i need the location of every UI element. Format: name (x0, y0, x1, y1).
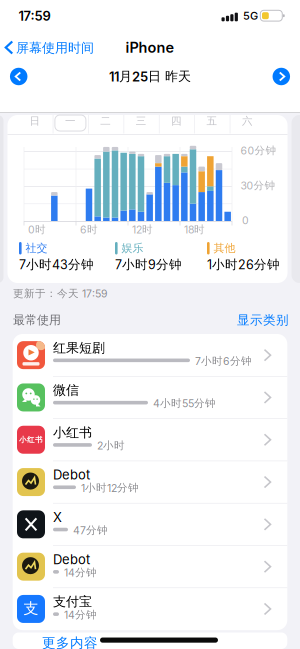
staticText: Debot (53, 552, 90, 567)
staticText: 最常使用 (13, 312, 61, 327)
staticText: 红果短剧 (53, 340, 105, 356)
staticText: 0 (242, 214, 249, 227)
staticText: 18时 (184, 223, 205, 236)
staticText: 60分钟 (240, 144, 276, 157)
staticText: 47分钟 (73, 523, 108, 537)
staticText: 0时 (28, 223, 46, 236)
staticText: 1小时12分钟 (81, 481, 139, 494)
staticText: 7小时43分钟 (19, 257, 94, 272)
staticText: 更新于：今天 17:59 (13, 287, 108, 300)
staticText: 一 (65, 114, 76, 128)
button[interactable]: 小红书 (13, 419, 287, 461)
button[interactable]: 微信 (13, 376, 287, 419)
staticText: 三 (136, 114, 147, 128)
staticText: 支付宝 (53, 594, 92, 610)
staticText: 显示类别 (237, 312, 289, 328)
staticText: iPhone (125, 39, 174, 56)
button[interactable]: Debot (13, 545, 287, 588)
staticText: 30分钟 (240, 179, 275, 192)
staticText: 娱乐 (121, 241, 143, 255)
staticText: 屏幕使用时间 (16, 40, 94, 56)
staticText: X (53, 509, 62, 525)
staticText: 4小时55分钟 (153, 397, 216, 410)
button[interactable]: 更多内容 (13, 632, 287, 649)
staticText: 四 (171, 114, 182, 128)
staticText: 日 (29, 114, 40, 128)
staticText: 二 (100, 114, 111, 128)
staticText: 微信 (53, 382, 79, 398)
staticText: 14分钟 (64, 608, 97, 621)
button[interactable]: 屏幕使用时间 (2, 32, 110, 62)
staticText: 6时 (80, 223, 98, 236)
button[interactable]: 支 (13, 588, 287, 630)
button[interactable]: 后一天 (273, 68, 290, 85)
button[interactable]: X (13, 503, 287, 545)
staticText: 1小时26分钟 (207, 257, 280, 272)
staticText: 更多内容 (42, 634, 98, 649)
staticText: 社交 (25, 241, 47, 255)
staticText: 12时 (132, 223, 153, 236)
staticText: 五 (206, 114, 217, 128)
staticText: 小红书 (19, 435, 43, 444)
staticText: 2小时 (97, 439, 125, 452)
staticText: 5G (243, 9, 258, 22)
staticText: 六 (242, 114, 253, 128)
button[interactable]: 前一天 (10, 68, 27, 85)
staticText: 7小时6分钟 (195, 354, 252, 367)
staticText: 14分钟 (64, 566, 97, 579)
button[interactable]: Debot (13, 461, 287, 503)
button[interactable]: 红果短剧 (13, 334, 287, 376)
staticText: Debot (53, 467, 90, 483)
staticText: 7小时9分钟 (115, 257, 182, 272)
staticText: 17:59 (18, 8, 50, 24)
staticText: 11月25日 昨天 (109, 68, 191, 85)
staticText: 小红书 (53, 424, 92, 441)
button[interactable]: 显示类别 (237, 312, 289, 328)
staticText: 支 (23, 599, 38, 618)
staticText: 其他 (213, 241, 235, 255)
